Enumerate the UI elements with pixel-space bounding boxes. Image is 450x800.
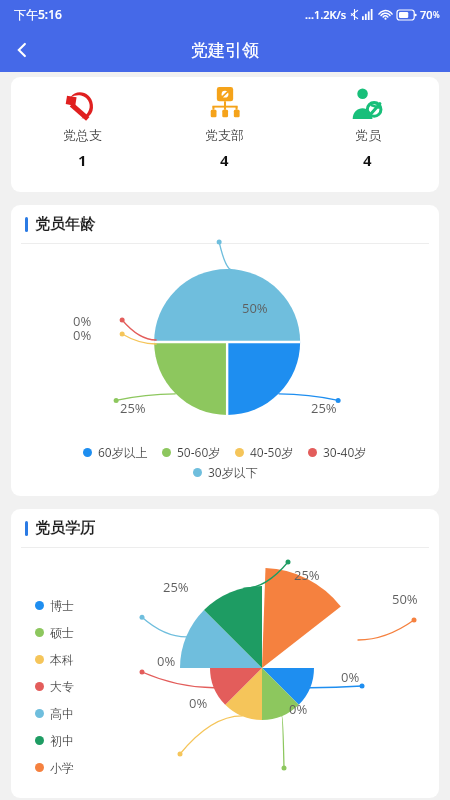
- button[interactable]: 党员: [296, 85, 439, 172]
- staticText: 25%: [311, 399, 337, 417]
- staticText: 下午5:16: [14, 6, 62, 22]
- button[interactable]: 党总支: [11, 85, 153, 172]
- staticText: 党员学历: [35, 519, 95, 538]
- other: 党员: [351, 87, 385, 121]
- staticText: 40-50岁: [250, 444, 294, 460]
- staticText: 25%: [120, 399, 146, 417]
- staticText: 大专: [50, 679, 74, 694]
- staticText: 25%: [294, 566, 320, 584]
- staticText: 小学: [50, 760, 74, 775]
- staticText: 博士: [50, 598, 74, 613]
- staticText: 高中: [50, 706, 74, 721]
- staticText: 党总支: [63, 127, 102, 143]
- other: 党支部: [208, 87, 242, 121]
- staticText: 党员: [355, 127, 381, 143]
- staticText: 30-40岁: [323, 444, 367, 460]
- staticText: ...1.2K/s: [305, 7, 347, 22]
- button[interactable]: 党支部: [153, 85, 296, 172]
- staticText: 50%: [392, 590, 418, 608]
- staticText: 初中: [50, 733, 74, 748]
- button[interactable]: Back: [0, 28, 44, 72]
- staticText: 0%: [73, 326, 92, 344]
- staticText: 本科: [50, 652, 74, 667]
- staticText: 60岁以上: [98, 444, 148, 460]
- staticText: 硕士: [50, 625, 74, 640]
- staticText: 4: [220, 150, 229, 170]
- staticText: 0%: [189, 694, 208, 712]
- staticText: 0%: [289, 700, 308, 718]
- staticText: 党建引领: [191, 40, 259, 61]
- staticText: 0%: [341, 668, 360, 686]
- staticText: 25%: [163, 578, 189, 596]
- staticText: 党支部: [205, 127, 244, 143]
- other: 党总支: [65, 87, 99, 121]
- staticText: 1: [78, 150, 87, 170]
- staticText: 0%: [157, 652, 176, 670]
- staticText: 70: [420, 7, 433, 22]
- staticText: 50%: [242, 299, 268, 317]
- staticText: 党员年龄: [35, 215, 95, 234]
- staticText: %: [433, 9, 440, 20]
- staticText: 0%: [73, 312, 92, 330]
- staticText: 4: [363, 150, 372, 170]
- staticText: 30岁以下: [208, 464, 258, 480]
- staticText: 50-60岁: [177, 444, 221, 460]
